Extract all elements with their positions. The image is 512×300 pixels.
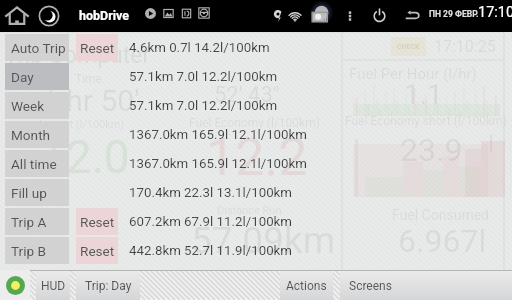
staticText: Fuel Consumed: [392, 207, 489, 223]
staticText: Trip Computer: [4, 42, 151, 69]
button[interactable]: Auto Trip: [0, 33, 512, 62]
button[interactable]: Gallery: [162, 7, 175, 20]
staticText: 17:10: [478, 4, 512, 21]
staticText: 1367.0km 165.9l 12.1l/100km: [129, 127, 307, 143]
staticText: Trip: Day: [85, 279, 132, 293]
button[interactable]: Home: [4, 3, 30, 29]
staticText: Fuel Economy (l/100km): [189, 116, 320, 130]
button[interactable]: Day: [0, 62, 512, 91]
staticText: All time: [11, 156, 57, 172]
staticText: ПН 29 ФЕВР.: [429, 9, 479, 19]
button[interactable]: Week: [0, 91, 512, 120]
staticText: Screens: [349, 279, 392, 293]
button[interactable]: Driving mode: [197, 6, 211, 20]
button[interactable]: Reset: [76, 208, 118, 235]
staticText: Auto Trip: [11, 40, 66, 56]
button[interactable]: Reset: [76, 34, 118, 61]
staticText: Day: [11, 69, 34, 85]
staticText: Week: [11, 98, 45, 114]
staticText: 23.9: [400, 131, 463, 169]
staticText: 52' 43": [214, 82, 280, 108]
button[interactable]: Month: [0, 120, 512, 149]
staticText: Fuel Economy short (l/100km): [345, 114, 507, 128]
button[interactable]: Screens: [340, 271, 512, 300]
staticText: 170.4km 22.3l 13.1l/100km: [129, 185, 293, 201]
button[interactable]: Trip: Day: [76, 271, 140, 300]
staticText: Actions: [286, 279, 327, 293]
staticText: 57.1km 7.0l 12.2l/100km: [129, 69, 278, 85]
button[interactable]: Night mode: [36, 3, 62, 29]
staticText: 12.0: [40, 130, 130, 184]
staticText: 6.967l: [398, 222, 487, 260]
staticText: Time: [75, 72, 102, 86]
staticText: 17:10:25: [434, 37, 496, 56]
button[interactable]: More options: [342, 8, 358, 24]
staticText: 57.1km 7.0l 12.2l/100km: [129, 98, 278, 114]
staticText: Fill up: [11, 185, 47, 201]
staticText: 1.1: [404, 78, 443, 111]
button[interactable]: Actions: [280, 271, 333, 300]
staticText: hobDrive: [79, 8, 130, 23]
button[interactable]: All time: [0, 149, 512, 178]
staticText: 1 hr 50': [42, 83, 140, 118]
staticText: Trip B: [11, 243, 46, 259]
staticText: Reset: [80, 40, 115, 56]
staticText: 1367.0km 165.9l 12.1l/100km: [129, 156, 307, 172]
button[interactable]: Connection status: [0, 270, 30, 300]
button[interactable]: Play: [144, 7, 157, 20]
button[interactable]: Back: [401, 7, 424, 24]
staticText: 57.09km: [191, 219, 336, 262]
button[interactable]: HUD: [36, 271, 70, 300]
staticText: 4.6km 0.7l 14.2l/100km: [129, 40, 270, 56]
staticText: CHECK: [397, 43, 420, 51]
button[interactable]: Fill up: [0, 178, 512, 207]
staticText: Reset: [80, 214, 115, 230]
staticText: Month: [11, 127, 51, 143]
staticText: Distance Run: [217, 204, 282, 217]
staticText: 12.2: [206, 127, 308, 188]
staticText: HUD: [41, 279, 66, 293]
staticText: 442.8km 52.7l 11.9l/100km: [129, 243, 293, 259]
staticText: Trip A: [11, 214, 47, 230]
button[interactable]: Trip A: [0, 207, 512, 236]
button[interactable]: Trip B: [0, 236, 512, 265]
button[interactable]: Display mode: [180, 7, 193, 20]
staticText: Instant (l/100km): [39, 118, 125, 131]
button[interactable]: Reset: [76, 237, 118, 264]
staticText: Fuel Per Hour (l/hr): [349, 65, 477, 83]
staticText: Reset: [80, 243, 115, 259]
staticText: 607.2km 67.9l 11.2l/100km: [129, 214, 293, 230]
button[interactable]: Power: [370, 6, 389, 25]
